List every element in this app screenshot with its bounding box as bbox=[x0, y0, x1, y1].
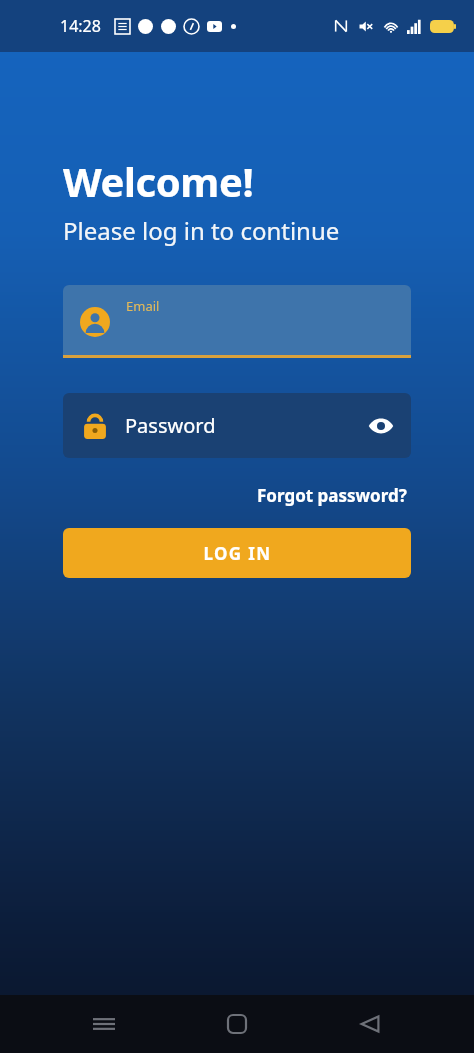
button[interactable]: Recent apps bbox=[75, 995, 133, 1053]
staticText: Welcome! bbox=[63, 154, 254, 208]
button[interactable]: Forgot password? bbox=[253, 480, 411, 511]
staticText: Email bbox=[126, 297, 160, 315]
staticText: Password bbox=[125, 412, 359, 439]
button[interactable]: LOG IN bbox=[63, 528, 411, 578]
button[interactable]: Password bbox=[63, 393, 411, 458]
staticText: 14:28 bbox=[60, 15, 101, 37]
staticText: Please log in to continue bbox=[63, 214, 340, 247]
button[interactable]: Email bbox=[63, 285, 411, 358]
staticText: LOG IN bbox=[203, 542, 272, 565]
button[interactable]: Show password bbox=[359, 404, 403, 448]
staticText: Forgot password? bbox=[257, 484, 407, 507]
button[interactable]: Home bbox=[208, 995, 266, 1053]
button[interactable]: Back bbox=[341, 995, 399, 1053]
